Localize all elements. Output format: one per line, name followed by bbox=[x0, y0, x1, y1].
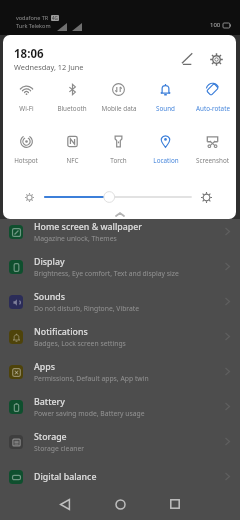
staticText: Badges, Lock screen settings bbox=[34, 339, 126, 348]
staticText: Sound bbox=[156, 104, 175, 113]
button[interactable]: Location bbox=[142, 132, 189, 165]
button[interactable]: Back bbox=[50, 489, 80, 519]
staticText: Hotspot bbox=[14, 156, 38, 165]
staticText: Digital balance bbox=[34, 471, 97, 483]
staticText: Bluetooth bbox=[57, 104, 87, 113]
button[interactable]: NFC bbox=[49, 132, 95, 165]
staticText: 18:06 bbox=[14, 46, 44, 62]
staticText: Power saving mode, Battery usage bbox=[34, 409, 145, 418]
staticText: Magazine unlock, Themes bbox=[34, 234, 117, 243]
button[interactable]: Storage bbox=[0, 424, 240, 459]
button[interactable]: Wi-Fi bbox=[3, 80, 49, 113]
staticText: Permissions, Default apps, App twin bbox=[34, 374, 149, 383]
staticText: Mobile data bbox=[101, 104, 137, 113]
button[interactable]: Apps bbox=[0, 354, 240, 389]
button[interactable]: Hotspot bbox=[3, 132, 49, 165]
staticText: Auto-rotate bbox=[196, 104, 230, 113]
button[interactable]: Mobile data bbox=[95, 80, 142, 113]
staticText: Display bbox=[34, 256, 65, 268]
staticText: Storage bbox=[34, 431, 67, 443]
staticText: 100 bbox=[210, 21, 221, 29]
button[interactable]: Notifications bbox=[0, 319, 240, 354]
staticText: Screenshot bbox=[196, 156, 229, 165]
staticText: NFC bbox=[66, 156, 79, 165]
staticText: vodafone TR bbox=[16, 14, 49, 21]
staticText: Storage cleaner bbox=[34, 444, 85, 453]
button[interactable]: Digital balance bbox=[0, 459, 240, 494]
staticText: Battery bbox=[34, 396, 65, 408]
button[interactable]: Display bbox=[0, 249, 240, 284]
staticText: Location bbox=[153, 156, 179, 165]
button[interactable]: Torch bbox=[95, 132, 142, 165]
staticText: Wi-Fi bbox=[19, 104, 34, 113]
button[interactable]: Auto-rotate bbox=[189, 80, 236, 113]
staticText: Turk Telekom bbox=[16, 22, 51, 29]
button[interactable]: Battery bbox=[0, 389, 240, 424]
staticText: 4G bbox=[52, 15, 58, 21]
staticText: Brightness, Eye comfort, Text and displa… bbox=[34, 269, 179, 278]
staticText: Do not disturb, Ringtone, Vibrate bbox=[34, 304, 140, 313]
button[interactable]: Home bbox=[105, 489, 135, 519]
button[interactable]: Home screen & wallpaper bbox=[0, 214, 240, 249]
button[interactable]: Recents bbox=[160, 489, 190, 519]
staticText: Sounds bbox=[34, 291, 65, 303]
staticText: Torch bbox=[110, 156, 127, 165]
button[interactable]: Screenshot bbox=[189, 132, 236, 165]
button[interactable]: Edit bbox=[176, 48, 198, 70]
staticText: Notifications bbox=[34, 326, 88, 338]
button[interactable]: Bluetooth bbox=[49, 80, 95, 113]
staticText: Apps bbox=[34, 361, 55, 373]
button[interactable]: Settings bbox=[205, 48, 227, 70]
button[interactable]: Sounds bbox=[0, 284, 240, 319]
staticText: Wednesday, 12 June bbox=[14, 62, 84, 72]
button[interactable]: Sound bbox=[142, 80, 189, 113]
staticText: Home screen & wallpaper bbox=[34, 221, 143, 233]
